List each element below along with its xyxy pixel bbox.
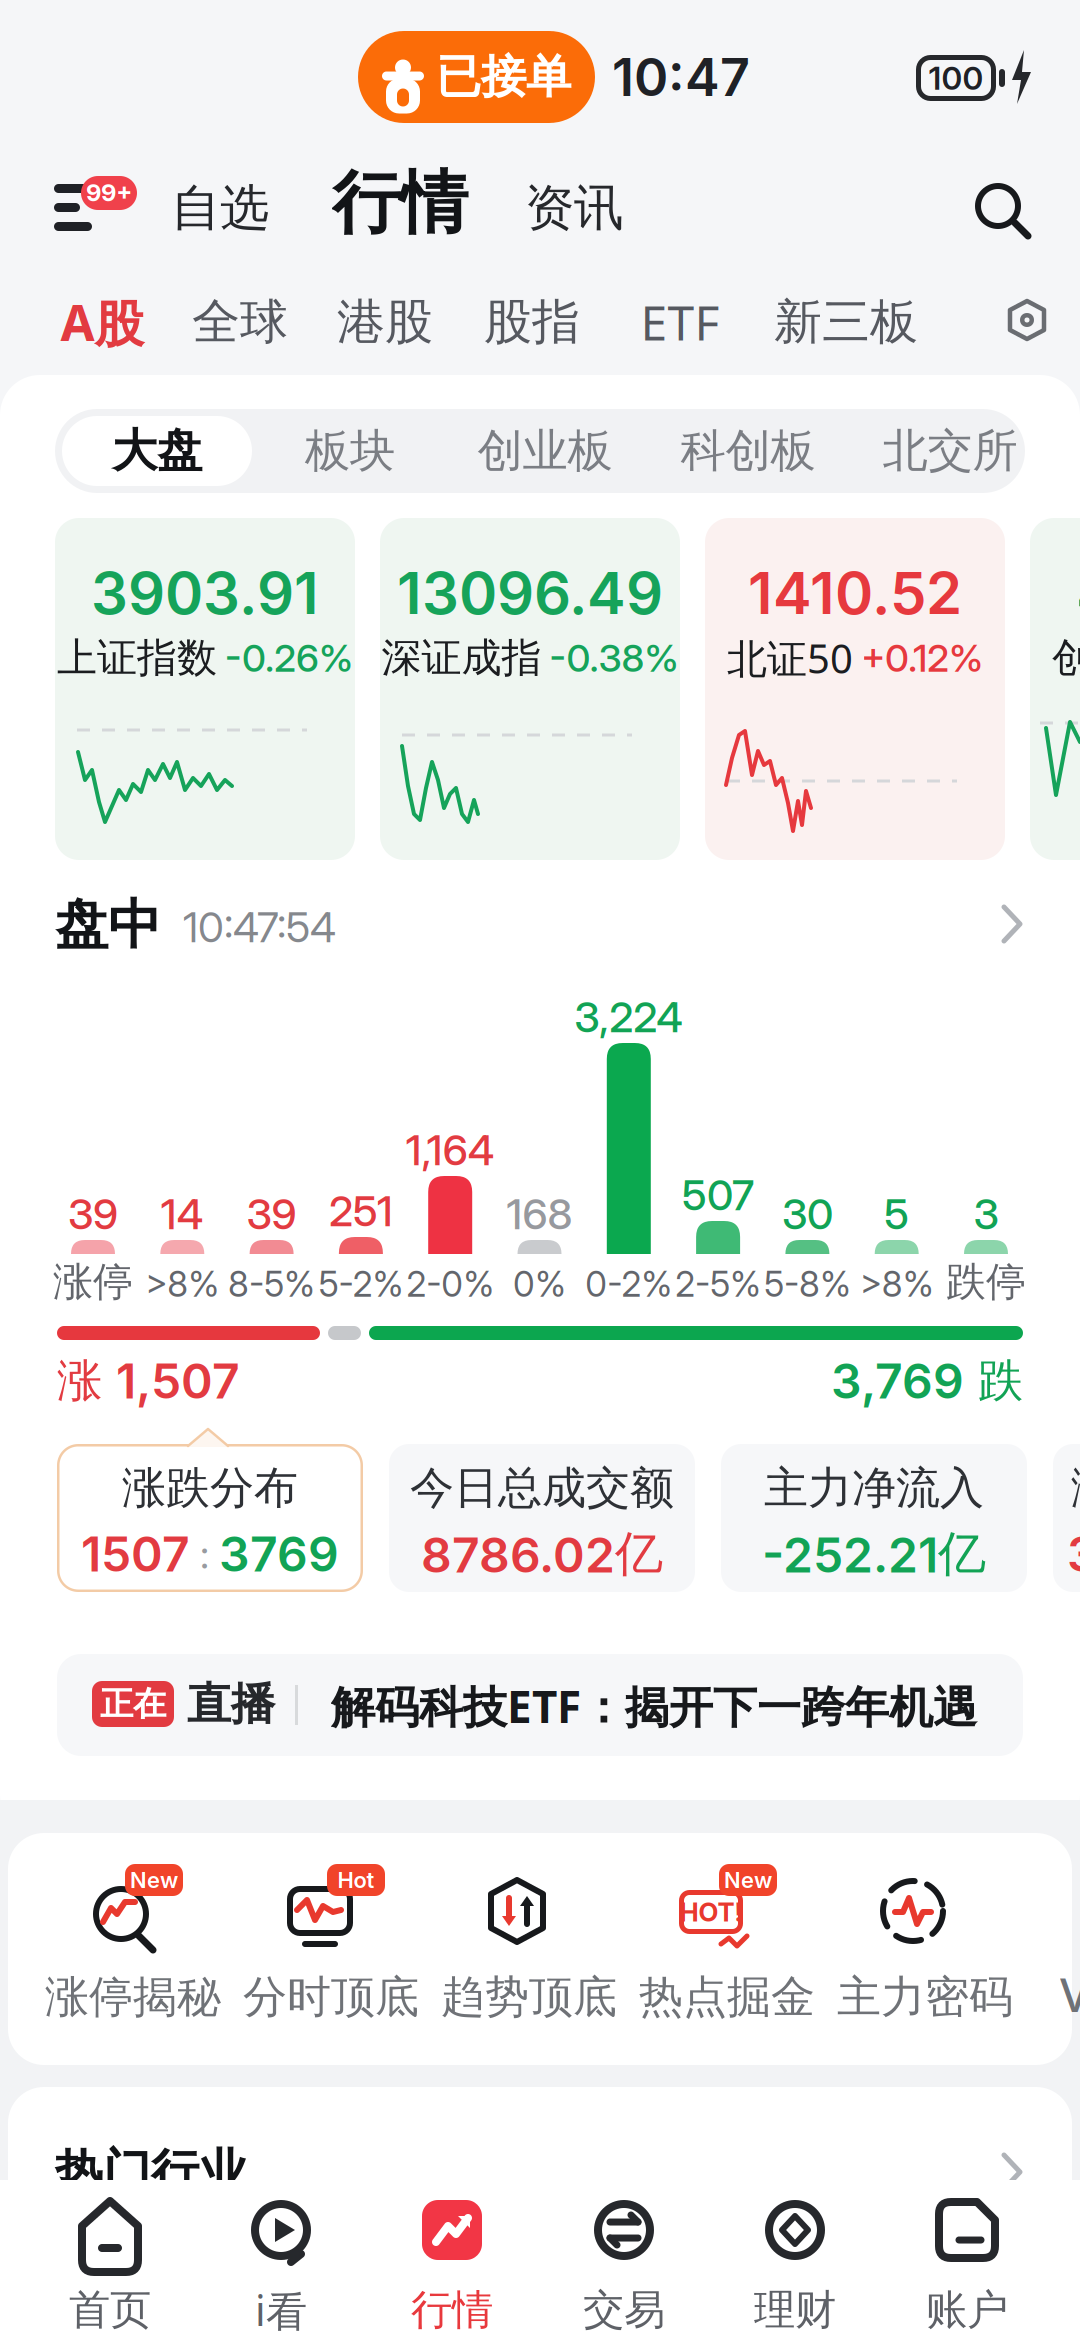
button[interactable]: Hot (271, 1864, 391, 2030)
button[interactable]: 理财 (715, 2188, 875, 2340)
button[interactable]: 板块 (285, 409, 415, 493)
staticText: 已接单 (436, 49, 571, 105)
staticText: 0-2% (585, 1263, 672, 1305)
staticText: 0% (513, 1263, 566, 1305)
staticText: 涨跌分布 (122, 1461, 298, 1515)
staticText: 5-8% (764, 1263, 851, 1305)
button[interactable]: 全球 (185, 289, 295, 355)
staticText: Hot (337, 1867, 374, 1893)
button[interactable]: 首页 (30, 2188, 190, 2340)
staticText: 10:47:54 (183, 902, 336, 952)
staticText: 8-5% (228, 1263, 315, 1305)
staticText: 主力密码 (837, 1970, 1013, 2024)
staticText: 资讯 (525, 178, 623, 238)
button[interactable]: 今日总成交额 (389, 1444, 695, 1592)
button[interactable]: A股 (47, 289, 157, 355)
staticText: 1,164 (406, 1125, 495, 1175)
staticText: 8786.02亿 (421, 1524, 663, 1584)
button[interactable]: ETF (630, 289, 730, 355)
staticText: 100 (928, 59, 983, 97)
staticText: 科创板 (680, 423, 815, 479)
button[interactable]: 4586.17 (1030, 518, 1080, 860)
button[interactable]: 已接单 (358, 31, 595, 123)
button[interactable]: 交易 (544, 2188, 704, 2340)
staticText: 分时顶底 (243, 1970, 419, 2024)
button[interactable]: HOT! (667, 1864, 787, 2030)
staticText: 507 (682, 1170, 754, 1220)
button[interactable]: 盘中 (55, 893, 1023, 957)
button[interactable]: 股指 (477, 289, 587, 355)
staticText: +0.12% (861, 635, 983, 681)
staticText: 1410.52 (748, 558, 962, 628)
button[interactable]: 账户 (887, 2188, 1047, 2340)
staticText: 港股 (337, 292, 433, 351)
staticText: 3 (973, 1189, 998, 1239)
staticText: 交易 (583, 2285, 665, 2335)
staticText: New (130, 1867, 178, 1893)
staticText: 13096.49 (397, 558, 663, 628)
button[interactable]: 菜单 (54, 179, 144, 235)
staticText: 1507 (81, 1525, 190, 1583)
staticText: 30 (782, 1189, 833, 1239)
button[interactable]: 大盘 (62, 416, 252, 486)
staticText: 股指 (484, 292, 580, 351)
staticText: 涨停表现 (1071, 1461, 1080, 1515)
staticText: 10:47 (612, 45, 750, 108)
staticText: 4586.17 (1076, 558, 1080, 628)
button[interactable]: i看 (201, 2188, 361, 2340)
staticText: -0.26% (225, 635, 353, 681)
staticText: 全球 (192, 292, 288, 351)
button[interactable]: 涨跌分布 (57, 1428, 363, 1592)
staticText: 热点掘金 (639, 1970, 815, 2024)
staticText: New (724, 1867, 772, 1893)
button[interactable]: 主力净流入 (721, 1444, 1027, 1592)
staticText: 直播 (187, 1677, 275, 1731)
button[interactable]: 自选 (164, 172, 276, 244)
button[interactable]: VIP专区 (1060, 1864, 1080, 2030)
staticText: 上证指数 (57, 633, 217, 682)
staticText: 理财 (754, 2285, 836, 2335)
button[interactable]: New (73, 1864, 193, 2030)
staticText: 今日总成交额 (410, 1461, 674, 1515)
staticText: 3,224 (574, 992, 683, 1042)
staticText: 1,507 (116, 1352, 240, 1410)
button[interactable]: 创业板 (460, 409, 630, 493)
button[interactable]: 3903.91 (55, 518, 355, 860)
button[interactable]: 科创板 (663, 409, 833, 493)
button[interactable]: 搜索 (970, 178, 1034, 242)
staticText: 3903.91 (91, 558, 319, 628)
button[interactable]: 行情 (320, 158, 480, 248)
staticText: -252.21亿 (762, 1524, 986, 1584)
staticText: 3.61% (1067, 1525, 1080, 1583)
staticText: 深证成指 (381, 633, 541, 682)
button[interactable]: 资讯 (518, 172, 630, 244)
staticText: 5 (884, 1189, 909, 1239)
button[interactable]: 行情 (372, 2188, 532, 2340)
staticText: >8% (860, 1263, 934, 1305)
staticText: 正在 (100, 1683, 166, 1724)
button[interactable]: 热门行业 (55, 2140, 1023, 2204)
staticText: 3,769 (831, 1352, 964, 1410)
button[interactable]: 北交所 (865, 409, 1035, 493)
staticText: 跌 (978, 1353, 1023, 1409)
staticText: 168 (506, 1189, 572, 1239)
button[interactable]: 栏目设置 (1005, 299, 1049, 343)
staticText: 99+ (86, 178, 132, 207)
staticText: 涨停揭秘 (45, 1970, 221, 2024)
button[interactable]: 主力密码 (865, 1864, 985, 2030)
button[interactable]: 涨停表现 (1053, 1444, 1080, 1592)
button[interactable]: 13096.49 (380, 518, 680, 860)
staticText: 北证50 (727, 631, 853, 684)
staticText: 北交所 (882, 423, 1017, 479)
button[interactable]: 新三板 (771, 289, 921, 355)
staticText: 涨 (57, 1353, 102, 1409)
button[interactable]: 1410.52 (705, 518, 1005, 860)
button[interactable]: 趋势顶底 (469, 1864, 589, 2030)
staticText: 盘中 (55, 892, 161, 958)
staticText: 主力净流入 (764, 1461, 984, 1515)
staticText: 2-0% (406, 1263, 494, 1305)
staticText: ETF (640, 290, 719, 354)
staticText: 251 (329, 1186, 393, 1236)
button[interactable]: 正在 (57, 1654, 1023, 1756)
button[interactable]: 港股 (330, 289, 440, 355)
